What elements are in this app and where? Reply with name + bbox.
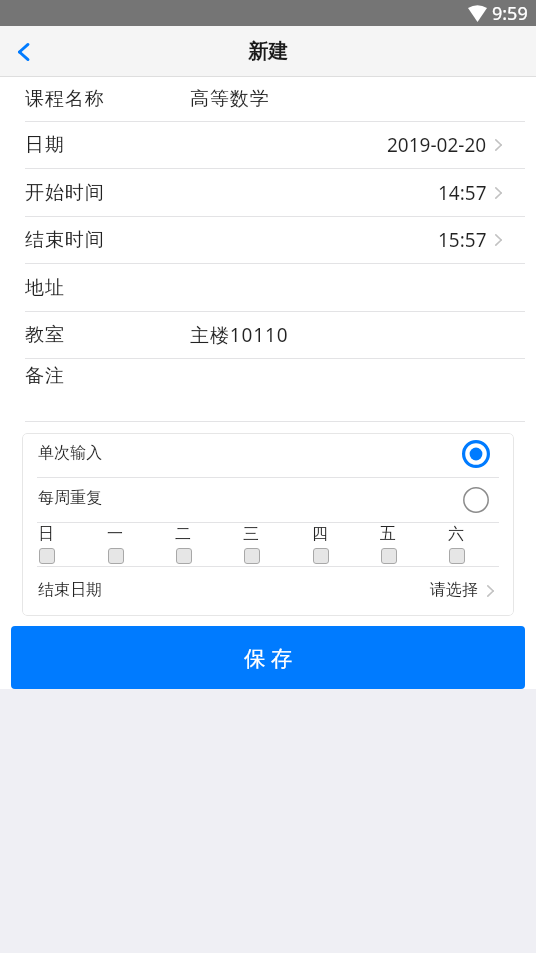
staticText: 高等数学: [190, 87, 270, 111]
button[interactable]: 开始时间: [0, 169, 536, 217]
button[interactable]: 备注: [0, 359, 536, 422]
staticText: 六: [448, 524, 464, 544]
staticText: 日期: [25, 133, 65, 157]
button[interactable]: 结束时间: [0, 217, 536, 264]
button[interactable]: Back: [0, 26, 50, 76]
staticText: 日: [38, 524, 54, 544]
staticText: 地址: [25, 276, 65, 300]
button[interactable]: 六: [442, 523, 470, 564]
staticText: 新建: [248, 39, 288, 64]
staticText: 结束时间: [25, 228, 105, 252]
button[interactable]: 课程名称: [0, 77, 536, 122]
staticText: 14:57: [438, 180, 487, 206]
staticText: 三: [243, 524, 259, 544]
staticText: 15:57: [438, 227, 487, 253]
staticText: 2019-02-20: [387, 132, 487, 158]
staticText: 单次输入: [38, 443, 103, 463]
button[interactable]: 一: [101, 523, 129, 564]
button[interactable]: 单次输入: [38, 434, 490, 477]
staticText: 一: [107, 524, 123, 544]
staticText: 主楼10110: [190, 322, 289, 348]
button[interactable]: 五: [374, 523, 402, 564]
staticText: 备注: [25, 364, 65, 388]
button[interactable]: 地址: [0, 264, 536, 312]
button[interactable]: 二: [169, 523, 197, 564]
button[interactable]: 三: [237, 523, 265, 564]
staticText: 保 存: [244, 643, 293, 672]
staticText: 结束日期: [38, 580, 103, 600]
button[interactable]: 结束日期: [38, 567, 494, 615]
staticText: 9:59: [492, 1, 528, 26]
staticText: 二: [175, 524, 191, 544]
button[interactable]: 日期: [0, 122, 536, 169]
button[interactable]: 每周重复: [38, 478, 489, 522]
staticText: 请选择: [430, 580, 479, 600]
staticText: 开始时间: [25, 181, 105, 205]
button[interactable]: 教室: [0, 312, 536, 359]
button[interactable]: 四: [306, 523, 334, 564]
button[interactable]: 保 存: [11, 626, 525, 689]
staticText: 教室: [25, 323, 65, 347]
staticText: 五: [380, 524, 396, 544]
staticText: 课程名称: [25, 87, 105, 111]
button[interactable]: 日: [32, 523, 60, 564]
staticText: 四: [312, 524, 328, 544]
staticText: 每周重复: [38, 488, 103, 508]
